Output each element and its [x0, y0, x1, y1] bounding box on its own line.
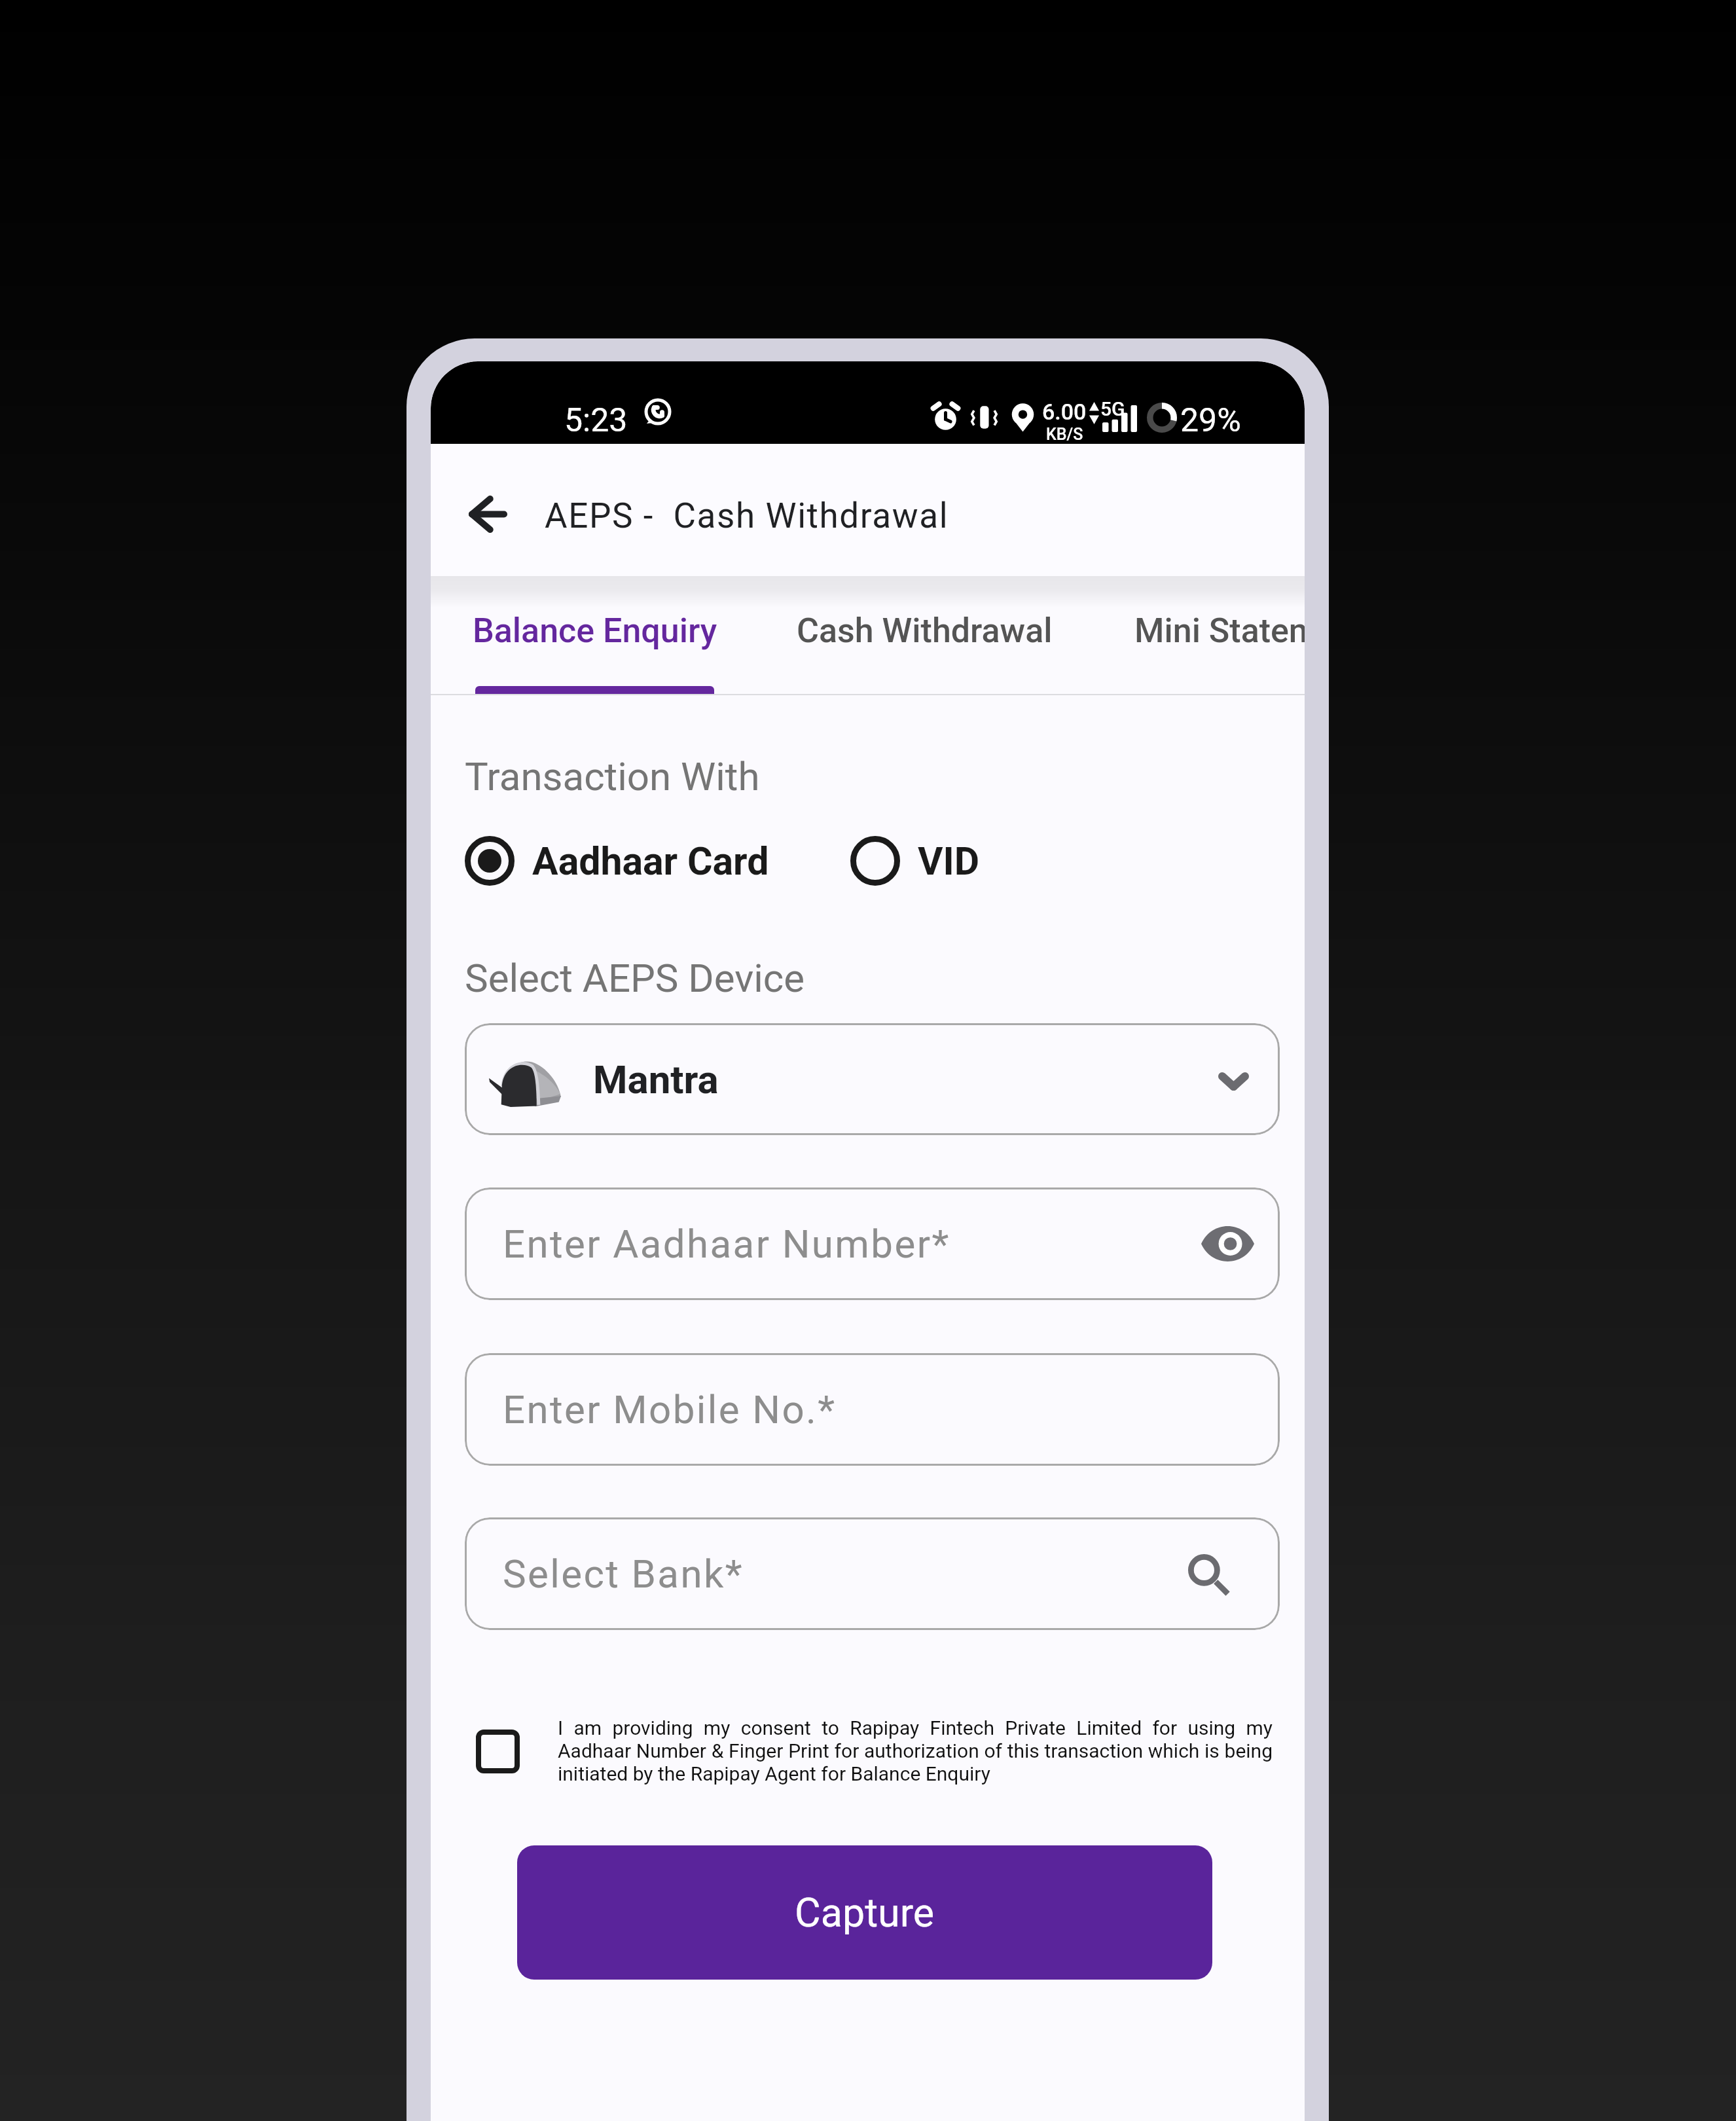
button[interactable]: Balance Enquiry	[431, 576, 755, 685]
staticText: Transaction With	[465, 753, 760, 799]
staticText: Aadhaar Card	[532, 839, 769, 884]
staticText: 5G	[1100, 397, 1125, 420]
button[interactable]: Back	[449, 476, 525, 552]
button[interactable]: VID	[850, 835, 980, 886]
button[interactable]: Select Bank*	[465, 1517, 1280, 1630]
staticText: 29%	[1180, 401, 1241, 440]
staticText: Mantra	[593, 1057, 719, 1102]
staticText: Select AEPS Device	[465, 955, 805, 1001]
staticText: Mini Statement	[1134, 611, 1305, 651]
staticText: Select Bank*	[503, 1551, 744, 1597]
button[interactable]: Capture	[517, 1845, 1212, 1980]
staticText: Cash Withdrawal	[797, 611, 1053, 651]
staticText: Enter Mobile No.*	[503, 1387, 837, 1432]
staticText: KB/S	[1046, 425, 1083, 444]
button[interactable]: I am providing my consent to Rapipay Fin…	[465, 1707, 1280, 1795]
button[interactable]: Enter Aadhaar Number*	[465, 1187, 1280, 1300]
button[interactable]: Enter Mobile No.*	[465, 1353, 1280, 1466]
button[interactable]: Aadhaar Card	[464, 835, 769, 886]
staticText: Capture	[795, 1889, 935, 1936]
staticText: I am providing my consent to Rapipay Fin…	[558, 1716, 1273, 1785]
staticText: 6.00	[1042, 399, 1087, 425]
staticText: VID	[918, 839, 980, 884]
staticText: AEPS - Cash Withdrawal	[545, 496, 949, 536]
staticText: Balance Enquiry	[473, 611, 717, 651]
button[interactable]: Mantra	[465, 1023, 1280, 1135]
button[interactable]: Mini Statement	[1094, 576, 1305, 685]
staticText: Enter Aadhaar Number*	[503, 1221, 950, 1267]
staticText: 5:23	[564, 401, 628, 440]
button[interactable]: Cash Withdrawal	[755, 576, 1094, 685]
